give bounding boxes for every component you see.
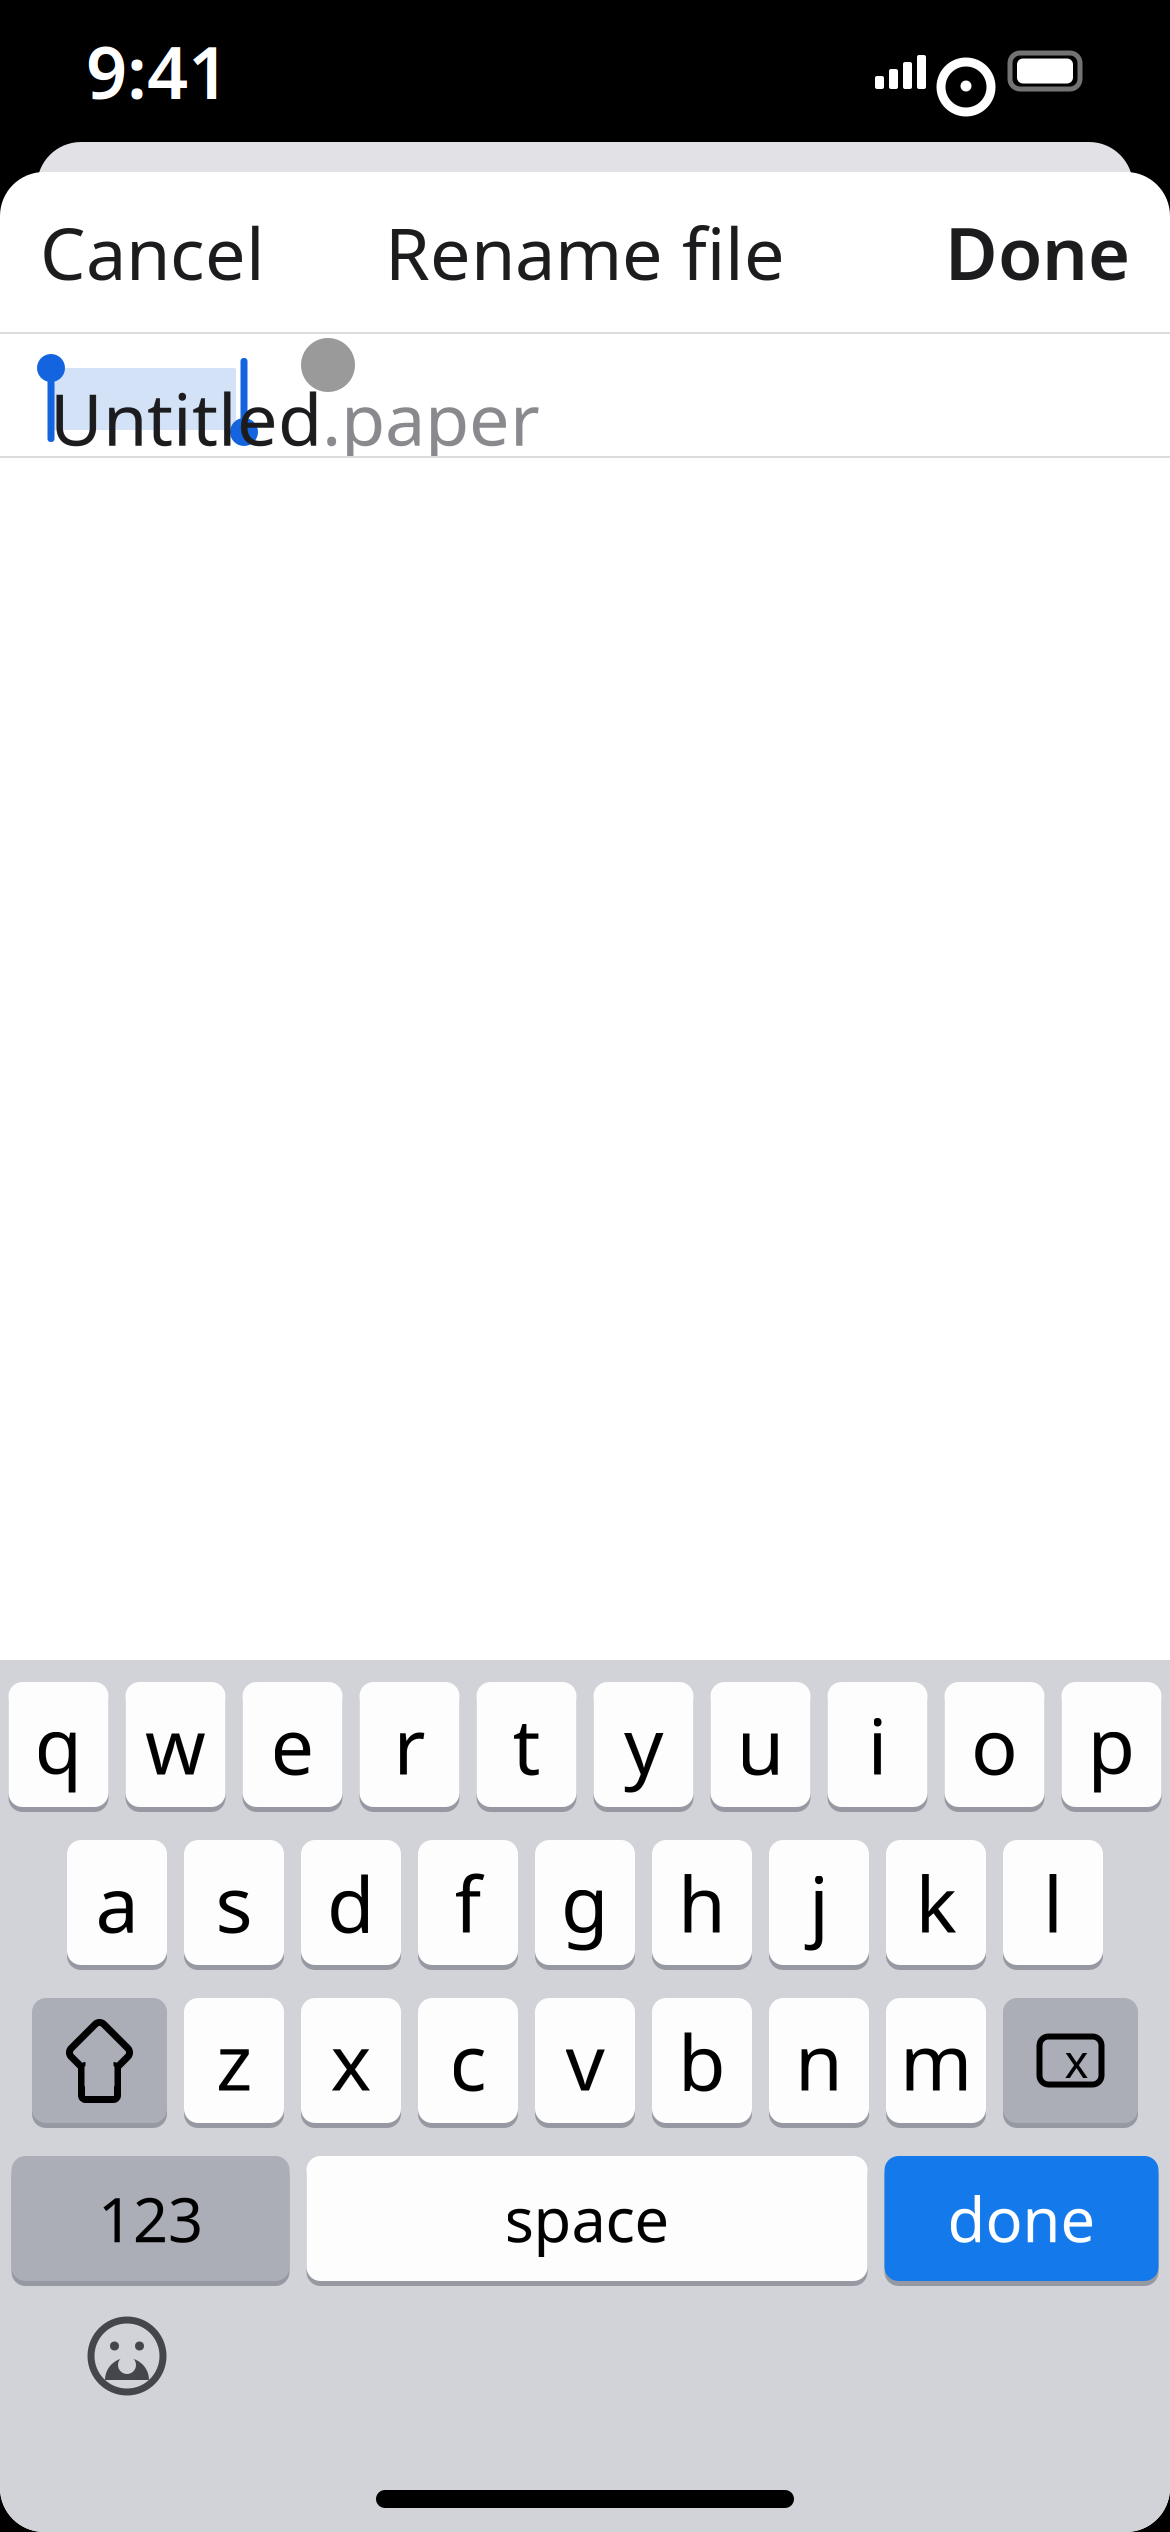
staticText: p <box>1087 1693 1135 1796</box>
staticText: Done <box>945 204 1130 300</box>
staticText: f <box>454 1851 481 1954</box>
button[interactable]: g <box>535 1840 635 1975</box>
button[interactable]: Emoji <box>84 2313 170 2399</box>
button[interactable]: Delete <box>1003 1998 1138 2133</box>
button[interactable]: y <box>593 1682 693 1817</box>
staticText: space <box>504 2178 669 2259</box>
button[interactable]: i <box>827 1682 927 1817</box>
button[interactable]: q <box>8 1682 108 1817</box>
staticText: n <box>795 2009 843 2112</box>
button[interactable]: Shift <box>32 1998 167 2133</box>
button[interactable]: k <box>886 1840 986 1975</box>
button[interactable]: w <box>125 1682 225 1817</box>
button[interactable]: j <box>769 1840 869 1975</box>
staticText: v <box>565 2009 604 2112</box>
button[interactable]: s <box>184 1840 284 1975</box>
staticText: .paper <box>322 370 540 466</box>
staticText: i <box>867 1693 887 1796</box>
button[interactable]: r <box>359 1682 459 1817</box>
button[interactable]: m <box>886 1998 986 2133</box>
staticText: j <box>809 1851 829 1954</box>
button[interactable]: f <box>418 1840 518 1975</box>
button[interactable]: b <box>652 1998 752 2133</box>
staticText: z <box>216 2009 252 2112</box>
button[interactable]: l <box>1003 1840 1103 1975</box>
button[interactable]: Untitled <box>0 334 1170 456</box>
button[interactable]: z <box>184 1998 284 2133</box>
button[interactable]: done <box>884 2156 1158 2291</box>
staticText: d <box>327 1851 375 1954</box>
button[interactable]: p <box>1061 1682 1161 1817</box>
staticText: x <box>330 2009 371 2112</box>
button[interactable]: e <box>242 1682 342 1817</box>
staticText: e <box>270 1693 314 1796</box>
staticText: a <box>95 1851 138 1954</box>
button[interactable]: d <box>301 1840 401 1975</box>
staticText: b <box>678 2009 726 2112</box>
button[interactable]: o <box>944 1682 1044 1817</box>
button[interactable]: h <box>652 1840 752 1975</box>
staticText: h <box>678 1851 726 1954</box>
button[interactable]: Cancel <box>0 172 305 332</box>
staticText: r <box>393 1693 425 1796</box>
staticText: t <box>512 1693 540 1796</box>
staticText: 123 <box>98 2178 203 2259</box>
button[interactable]: x <box>301 1998 401 2133</box>
staticText: 9:41 <box>86 23 229 119</box>
button[interactable]: v <box>535 1998 635 2133</box>
staticText: y <box>624 1693 663 1796</box>
button[interactable]: Done <box>905 172 1170 332</box>
staticText: u <box>736 1693 784 1796</box>
staticText: w <box>145 1693 206 1796</box>
staticText: Rename file <box>385 204 785 300</box>
button[interactable]: c <box>418 1998 518 2133</box>
staticText: o <box>971 1693 1018 1796</box>
button[interactable]: t <box>476 1682 576 1817</box>
button[interactable]: n <box>769 1998 869 2133</box>
staticText: k <box>915 1851 956 1954</box>
staticText: Untitled <box>50 370 322 466</box>
staticText: q <box>34 1693 82 1796</box>
button[interactable]: space <box>306 2156 867 2291</box>
staticText: c <box>449 2009 486 2112</box>
staticText: x <box>1064 2030 1088 2091</box>
staticText: s <box>215 1851 252 1954</box>
staticText: done <box>947 2178 1095 2259</box>
staticText: Cancel <box>40 204 265 300</box>
staticText: g <box>561 1851 609 1954</box>
staticText: l <box>1043 1851 1063 1954</box>
staticText: m <box>900 2009 972 2112</box>
button[interactable]: a <box>67 1840 167 1975</box>
button[interactable]: u <box>710 1682 810 1817</box>
button[interactable]: Numbers <box>11 2156 289 2291</box>
